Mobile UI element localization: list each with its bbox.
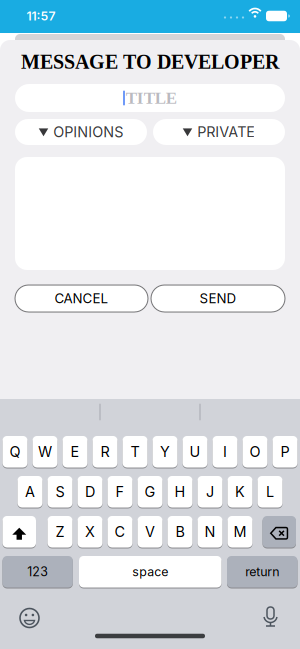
button[interactable]: H — [167, 476, 192, 509]
button[interactable]: P — [272, 436, 297, 469]
staticText: MESSAGE TO DEVELOPER — [21, 51, 279, 73]
button[interactable]: Dictation — [255, 602, 285, 632]
staticText: E — [70, 443, 79, 460]
button[interactable]: Shift — [2, 516, 36, 549]
staticText: Q — [9, 443, 20, 460]
staticText: I — [223, 443, 227, 460]
staticText: CANCEL — [54, 290, 108, 306]
button[interactable]: J — [197, 476, 222, 509]
button[interactable]: U — [182, 436, 207, 469]
button[interactable]: X — [77, 516, 102, 549]
button[interactable]: E — [62, 436, 87, 469]
button[interactable]: space — [79, 556, 221, 589]
button[interactable]: F — [107, 476, 132, 509]
button[interactable]: L — [257, 476, 282, 509]
button[interactable]: Emoji — [14, 603, 44, 633]
staticText: M — [233, 523, 246, 540]
staticText: R — [100, 443, 109, 460]
staticText: TITLE — [126, 89, 177, 107]
staticText: 123 — [27, 564, 48, 579]
button[interactable]: I — [212, 436, 237, 469]
button[interactable]: R — [92, 436, 117, 469]
staticText: V — [145, 523, 155, 540]
button[interactable]: PRIVATE — [153, 119, 285, 145]
staticText: N — [204, 523, 215, 540]
staticText: D — [85, 483, 95, 500]
staticText: Y — [160, 443, 170, 460]
staticText: L — [266, 483, 274, 500]
staticText: T — [130, 443, 139, 460]
staticText: PRIVATE — [197, 123, 255, 141]
button[interactable]: K — [227, 476, 252, 509]
button[interactable]: W — [32, 436, 57, 469]
button[interactable]: M — [227, 516, 252, 549]
staticText: H — [174, 483, 185, 500]
button[interactable]: C — [107, 516, 132, 549]
staticText: P — [280, 443, 289, 460]
button[interactable]: 123 — [2, 556, 73, 589]
button[interactable]: A — [17, 476, 42, 509]
button[interactable]: OPINIONS — [15, 119, 147, 145]
button[interactable]: V — [137, 516, 162, 549]
button[interactable]: Z — [47, 516, 72, 549]
button[interactable]: S — [47, 476, 72, 509]
button[interactable]: return — [227, 556, 297, 589]
button[interactable]: CANCEL — [15, 285, 148, 312]
staticText: O — [249, 443, 260, 460]
button[interactable]: T — [122, 436, 147, 469]
staticText: B — [175, 523, 184, 540]
staticText: OPINIONS — [53, 123, 123, 141]
button[interactable]: SEND — [151, 285, 285, 312]
staticText: 11:57 — [26, 9, 55, 23]
staticText: S — [55, 483, 64, 500]
staticText: return — [245, 564, 279, 579]
button[interactable]: Y — [152, 436, 177, 469]
staticText: F — [115, 483, 124, 500]
staticText: K — [235, 483, 245, 500]
staticText: J — [206, 483, 214, 500]
staticText: X — [85, 523, 95, 540]
button[interactable]: N — [197, 516, 222, 549]
staticText: Z — [55, 523, 64, 540]
staticText: space — [132, 564, 168, 579]
button[interactable]: Delete — [262, 516, 296, 549]
button[interactable]: G — [137, 476, 162, 509]
button[interactable]: D — [77, 476, 102, 509]
staticText: SEND — [199, 290, 236, 306]
staticText: W — [38, 443, 52, 460]
staticText: A — [25, 483, 35, 500]
button[interactable]: B — [167, 516, 192, 549]
staticText: C — [114, 523, 125, 540]
staticText: G — [144, 483, 155, 500]
staticText: U — [189, 443, 200, 460]
button[interactable]: O — [242, 436, 267, 469]
button[interactable]: Q — [2, 436, 27, 469]
